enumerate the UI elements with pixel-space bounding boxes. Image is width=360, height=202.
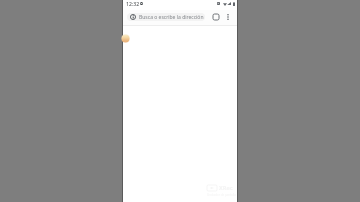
button[interactable]: More options bbox=[222, 11, 234, 23]
button[interactable]: Switch tabs bbox=[210, 11, 222, 23]
button[interactable]: Busca o escribe la dirección bbox=[127, 13, 205, 21]
staticText: Busca o escribe la dirección bbox=[139, 14, 204, 21]
staticText: 12:32 bbox=[126, 1, 140, 8]
staticText: XRec bbox=[219, 184, 233, 192]
